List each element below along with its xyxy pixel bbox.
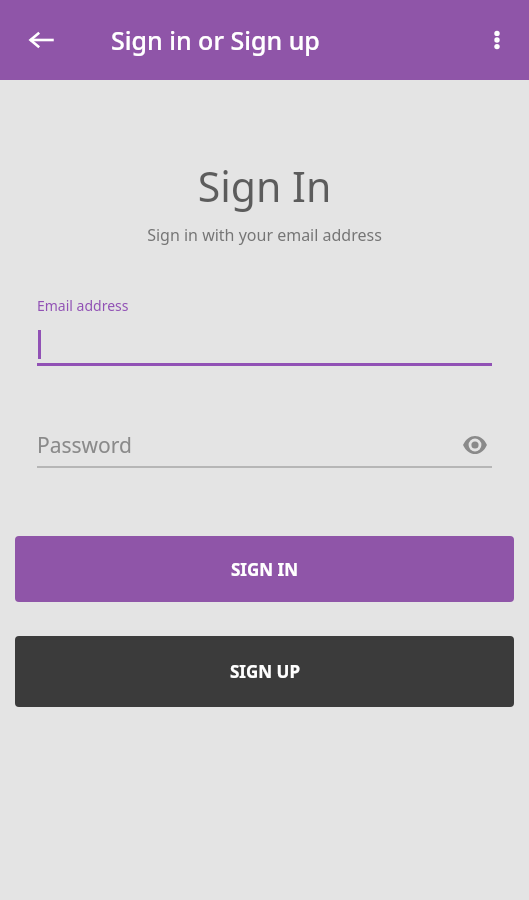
staticText: Sign In	[0, 158, 529, 214]
staticText: Sign in or Sign up	[111, 23, 320, 57]
staticText: Sign in with your email address	[0, 224, 529, 246]
button[interactable]: Email address	[37, 296, 492, 366]
staticText: SIGN UP	[230, 660, 300, 683]
button[interactable]: SIGN IN	[15, 536, 514, 602]
button[interactable]: Show password	[458, 428, 492, 462]
staticText: Password	[37, 431, 132, 460]
button[interactable]: SIGN UP	[15, 636, 514, 707]
staticText: Email address	[37, 296, 129, 315]
button[interactable]: More options	[472, 15, 522, 65]
button[interactable]: Back	[14, 12, 70, 68]
staticText: SIGN IN	[231, 558, 298, 581]
button[interactable]: Password	[37, 428, 492, 468]
